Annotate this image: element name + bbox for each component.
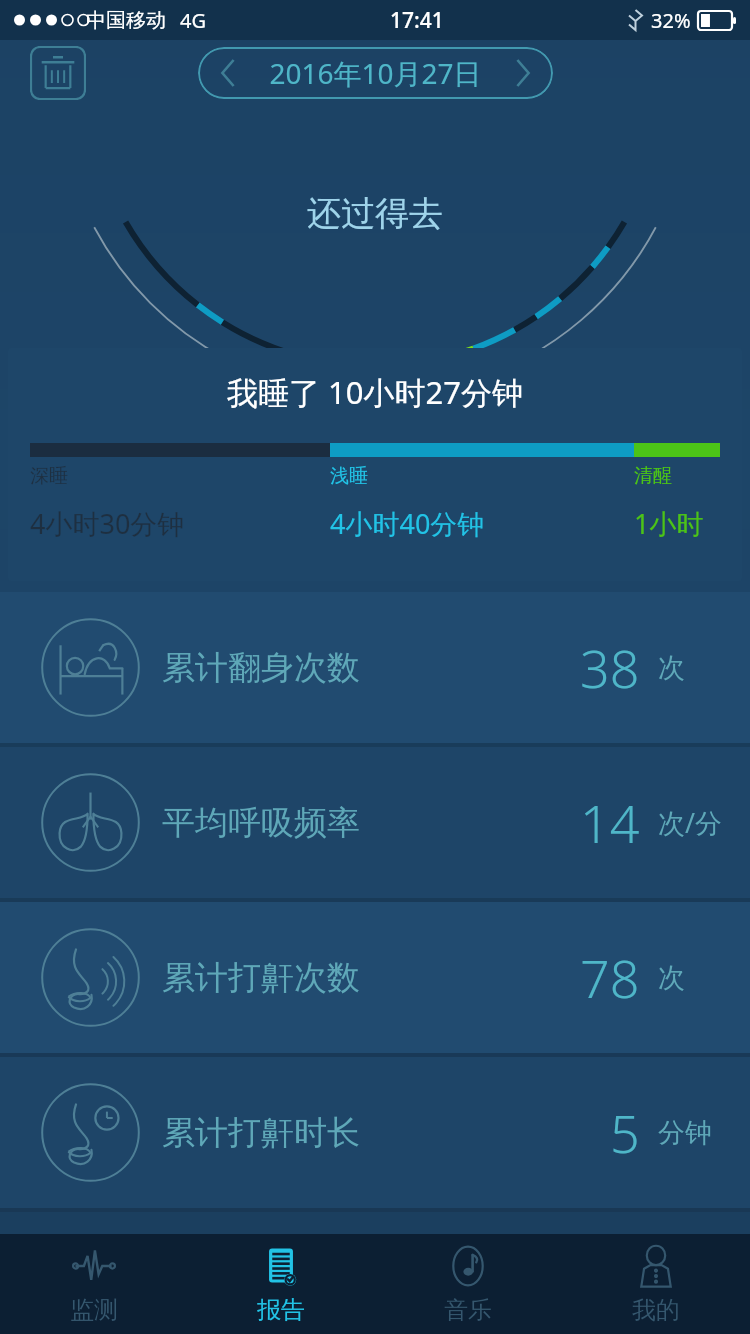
staticText: 78 bbox=[580, 942, 640, 1013]
staticText: 监测 bbox=[70, 1295, 118, 1325]
button[interactable]: 我的 bbox=[562, 1234, 750, 1334]
button[interactable]: 监测 bbox=[0, 1234, 187, 1334]
staticText: 浅睡 bbox=[330, 464, 368, 488]
staticText: 平均呼吸频率 bbox=[162, 802, 360, 844]
staticText: 音乐 bbox=[444, 1295, 492, 1325]
staticText: 2016年10月27日 bbox=[236, 54, 515, 92]
staticText: 1小时17分钟 bbox=[634, 505, 720, 542]
button[interactable]: 累计翻身次数 bbox=[0, 592, 750, 743]
staticText: 次 bbox=[658, 961, 685, 995]
button[interactable]: 累计打鼾时长 bbox=[0, 1057, 750, 1208]
staticText: 14 bbox=[580, 787, 640, 858]
staticText: 38 bbox=[580, 632, 640, 703]
button[interactable]: Delete bbox=[30, 46, 86, 100]
button[interactable]: 报告 bbox=[187, 1234, 374, 1334]
button[interactable]: 音乐 bbox=[374, 1234, 562, 1334]
staticText: 累计打鼾次数 bbox=[162, 957, 360, 999]
staticText: 4G bbox=[180, 7, 206, 34]
staticText: 4小时30分钟 bbox=[30, 505, 185, 542]
staticText: 分钟 bbox=[658, 1116, 712, 1150]
staticText: 次 bbox=[658, 651, 685, 685]
staticText: 还过得去 bbox=[307, 192, 443, 235]
staticText: 我的 bbox=[632, 1295, 680, 1325]
button[interactable]: 我睡了 10小时27分钟 bbox=[8, 348, 742, 581]
staticText: 5 bbox=[610, 1097, 640, 1168]
staticText: 32% bbox=[651, 7, 691, 34]
staticText: 清醒 bbox=[634, 464, 672, 488]
button[interactable]: 平均呼吸频率 bbox=[0, 747, 750, 898]
staticText: 次/分 bbox=[658, 804, 723, 841]
staticText: 累计翻身次数 bbox=[162, 647, 360, 689]
staticText: 报告 bbox=[257, 1295, 305, 1325]
staticText: 我睡了 10小时27分钟 bbox=[8, 371, 742, 413]
staticText: 中国移动 bbox=[86, 8, 166, 33]
staticText: 4小时40分钟 bbox=[330, 505, 485, 542]
button[interactable]: 2016年10月27日 bbox=[198, 47, 553, 99]
staticText: 累计打鼾时长 bbox=[162, 1112, 360, 1154]
staticText: 深睡 bbox=[30, 464, 68, 488]
staticText: 17:41 bbox=[390, 6, 444, 35]
button[interactable]: 累计打鼾次数 bbox=[0, 902, 750, 1053]
